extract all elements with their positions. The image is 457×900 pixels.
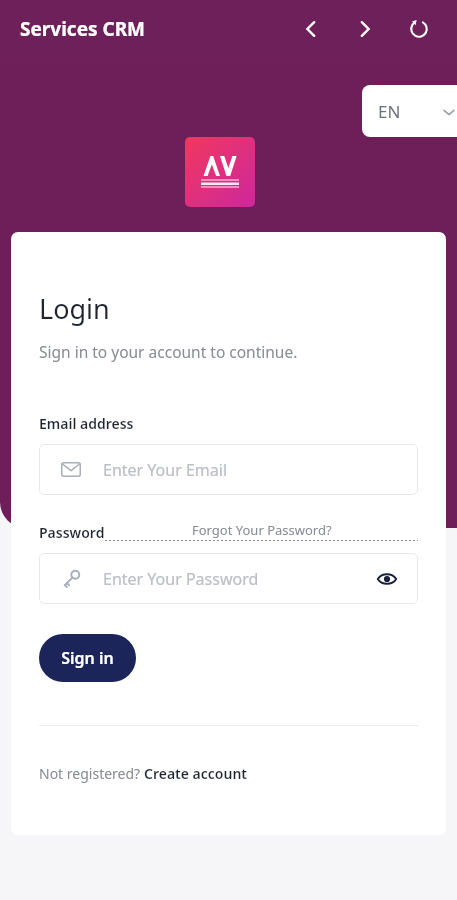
button[interactable]: Not registered? [39,764,248,783]
button[interactable]: Reload [399,9,439,49]
staticText: Not registered? [39,764,144,783]
button[interactable]: Enter Your Password [39,553,418,604]
staticText: Enter Your Email [103,459,228,481]
staticText: EN [378,100,401,123]
staticText: Enter Your Password [103,568,356,590]
staticText: Email address [39,414,134,433]
button[interactable]: Back [291,9,331,49]
button[interactable]: EN [362,85,457,137]
button[interactable]: Sign in [39,634,136,682]
staticText: Sign in to your account to continue. [39,341,298,362]
button[interactable]: Forward [345,9,385,49]
button[interactable]: Enter Your Email [39,444,418,495]
staticText: Password [39,523,105,542]
button[interactable]: Forgot Your Password? [105,521,418,542]
staticText: Forgot Your Password? [192,521,332,539]
staticText: Sign in [61,647,114,669]
staticText: Create account [144,764,248,783]
staticText: Login [39,290,110,327]
staticText: Services CRM [20,16,146,42]
button[interactable]: Show password [356,553,418,604]
